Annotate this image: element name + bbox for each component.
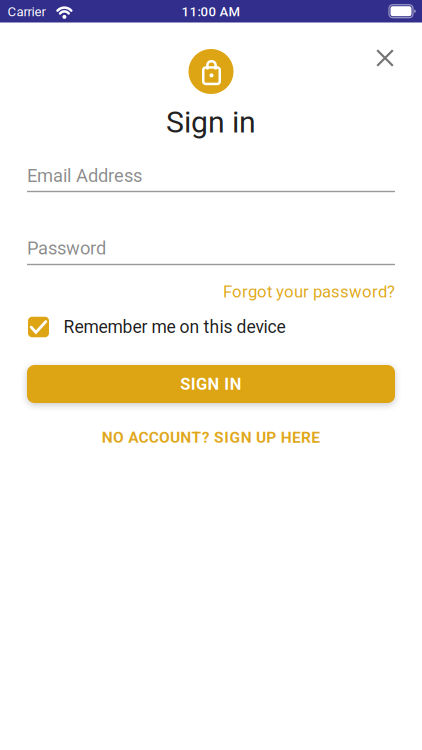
staticText: NO ACCOUNT? SIGN UP HERE bbox=[102, 428, 320, 447]
staticText: Remember me on this device bbox=[63, 317, 285, 337]
staticText: Forgot your password? bbox=[223, 282, 395, 301]
staticText: Sign in bbox=[166, 105, 256, 140]
button[interactable]: Forgot your password? bbox=[0, 282, 422, 301]
staticText: Email Address bbox=[27, 165, 142, 186]
staticText: Password bbox=[27, 238, 106, 259]
staticText: 11:00 AM bbox=[181, 4, 240, 19]
button[interactable]: Remember me on this device bbox=[0, 317, 422, 337]
button[interactable]: Close bbox=[373, 46, 397, 70]
button[interactable]: SIGN IN bbox=[27, 365, 395, 403]
staticText: Carrier bbox=[7, 4, 45, 19]
button[interactable]: NO ACCOUNT? SIGN UP HERE bbox=[102, 428, 320, 447]
staticText: SIGN IN bbox=[180, 374, 242, 394]
